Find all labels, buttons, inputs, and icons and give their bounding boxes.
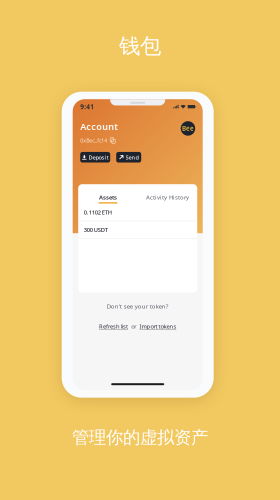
staticText: or <box>131 322 136 330</box>
button[interactable]: Assets <box>78 193 138 204</box>
staticText: Don't see your token? <box>107 302 169 310</box>
button[interactable]: 0.1102 ETH <box>78 204 197 221</box>
button[interactable]: Import tokens <box>139 322 176 330</box>
staticText: Send <box>126 153 139 161</box>
staticText: 300 USDT <box>84 226 108 234</box>
staticText: Activity History <box>146 193 189 201</box>
staticText: Account <box>80 120 118 132</box>
staticText: Import tokens <box>139 322 176 330</box>
button[interactable]: Deposit <box>80 152 110 162</box>
button[interactable]: Send <box>116 152 141 162</box>
staticText: Bee <box>182 124 194 133</box>
button[interactable]: 300 USDT <box>78 221 197 238</box>
staticText: Assets <box>99 193 117 201</box>
button[interactable]: Bee account <box>181 121 195 136</box>
staticText: Refresh list <box>99 322 128 330</box>
button[interactable]: Refresh list <box>99 322 128 330</box>
staticText: 0xBec...fc14 <box>80 137 107 144</box>
button[interactable]: Activity History <box>138 193 197 204</box>
staticText: 管理你的虚拟资产 <box>72 427 208 448</box>
staticText: 9:41 <box>80 102 94 111</box>
staticText: Deposit <box>89 153 109 161</box>
staticText: 钱包 <box>119 33 161 59</box>
staticText: 0.1102 ETH <box>84 208 112 216</box>
button[interactable]: Copy address <box>110 137 115 143</box>
